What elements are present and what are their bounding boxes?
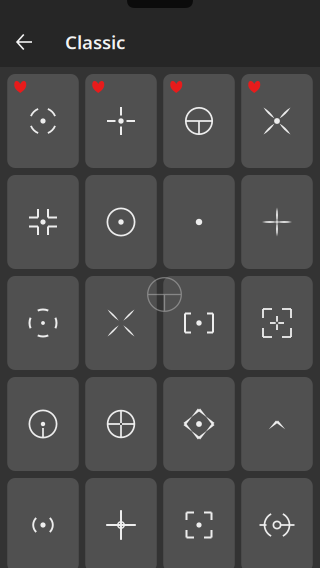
button[interactable]: Reticle — [85, 478, 157, 568]
button[interactable]: Reticle — [163, 478, 235, 568]
button[interactable]: Reticle — [241, 377, 313, 471]
button[interactable]: Reticle — [85, 276, 157, 370]
button[interactable]: Reticle — [7, 276, 79, 370]
button[interactable]: Reticle — [163, 74, 235, 168]
button[interactable]: Reticle — [163, 175, 235, 269]
button[interactable]: Back — [0, 22, 49, 62]
button[interactable]: Reticle — [85, 74, 157, 168]
button[interactable]: Reticle — [85, 377, 157, 471]
button[interactable]: Reticle — [7, 377, 79, 471]
button[interactable]: Reticle — [163, 276, 235, 370]
button[interactable]: Reticle — [241, 175, 313, 269]
button[interactable]: Reticle — [241, 74, 313, 168]
button[interactable]: Reticle — [7, 175, 79, 269]
staticText: Classic — [65, 30, 125, 54]
button[interactable]: Reticle — [7, 478, 79, 568]
button[interactable]: Reticle — [85, 175, 157, 269]
button[interactable]: Reticle — [163, 377, 235, 471]
button[interactable]: Reticle — [7, 74, 79, 168]
button[interactable]: Reticle — [241, 276, 313, 370]
button[interactable]: Reticle — [241, 478, 313, 568]
